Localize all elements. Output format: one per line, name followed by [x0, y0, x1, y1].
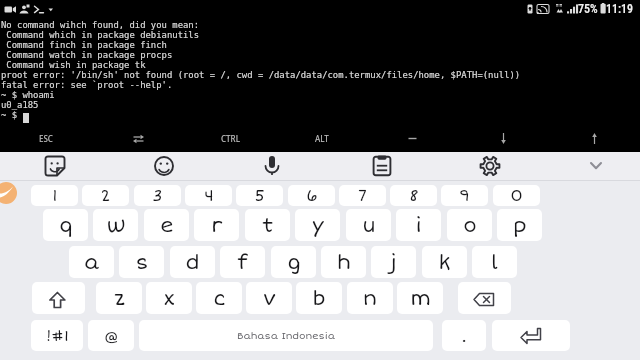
button[interactable]: o — [447, 209, 492, 241]
button[interactable]: t — [245, 209, 290, 241]
button[interactable]: h — [321, 246, 366, 278]
button[interactable]: 9 — [441, 185, 488, 206]
button[interactable]: k — [422, 246, 467, 278]
staticText: 8 — [409, 186, 419, 206]
button[interactable]: q — [43, 209, 88, 241]
button[interactable]: 6 — [288, 185, 335, 206]
staticText: ~ $ whoami — [1, 90, 55, 100]
button[interactable]: g — [271, 246, 316, 278]
staticText: Bahasa Indonesia — [237, 330, 335, 342]
staticText: No command wihch found, did you mean: — [1, 20, 200, 30]
button[interactable]: 3 — [134, 185, 181, 206]
staticText: !#1 — [46, 327, 69, 345]
staticText: 11:19 — [606, 2, 634, 16]
staticText: 7 — [358, 186, 367, 206]
button[interactable]: 2 — [82, 185, 129, 206]
button[interactable]: Emoji — [142, 154, 186, 178]
staticText: e — [160, 213, 174, 238]
staticText: @ — [104, 327, 119, 345]
staticText: 2 — [100, 186, 111, 206]
button[interactable]: r — [194, 209, 239, 241]
staticText: m — [410, 286, 431, 311]
button[interactable]: p — [497, 209, 542, 241]
button[interactable]: Arrow down — [458, 127, 549, 150]
button[interactable]: u — [346, 209, 391, 241]
staticText: ALT — [315, 133, 329, 144]
button[interactable]: Bahasa Indonesia — [139, 320, 433, 351]
staticText: n — [363, 286, 377, 311]
button[interactable]: @ — [88, 320, 134, 351]
button[interactable]: CTRL — [184, 127, 276, 150]
staticText: 5 — [254, 186, 265, 206]
staticText: x — [163, 286, 175, 311]
button[interactable]: Settings — [468, 154, 512, 178]
button[interactable]: 1 — [31, 185, 78, 206]
button[interactable]: Minus — [367, 127, 458, 150]
button[interactable]: n — [347, 282, 393, 314]
button[interactable]: c — [196, 282, 242, 314]
staticText: 1 — [52, 186, 58, 206]
staticText: Command watch in package procps — [1, 50, 173, 60]
other: Minus — [408, 133, 417, 144]
staticText: 75% — [578, 2, 598, 16]
button[interactable]: ALT — [276, 127, 367, 150]
button[interactable]: l — [472, 246, 517, 278]
button[interactable]: m — [397, 282, 443, 314]
staticText: 6 — [306, 186, 318, 206]
staticText: c — [213, 286, 226, 311]
button[interactable]: Backspace — [458, 282, 511, 314]
staticText: f — [237, 250, 248, 275]
button[interactable]: Assistant — [0, 182, 17, 204]
staticText: . — [461, 325, 467, 347]
button[interactable]: i — [396, 209, 441, 241]
button[interactable]: d — [170, 246, 215, 278]
button[interactable]: 8 — [390, 185, 437, 206]
staticText: v — [263, 286, 276, 311]
staticText: i — [415, 213, 422, 238]
staticText: y — [312, 213, 324, 238]
button[interactable]: b — [296, 282, 342, 314]
button[interactable]: 7 — [339, 185, 386, 206]
staticText: 0 — [510, 186, 523, 206]
button[interactable]: v — [246, 282, 292, 314]
button[interactable]: Hide keyboard — [574, 154, 618, 178]
button[interactable]: w — [93, 209, 138, 241]
other: Arrow up — [590, 133, 599, 144]
staticText: ESC — [39, 133, 53, 144]
button[interactable]: a — [69, 246, 114, 278]
button[interactable]: f — [220, 246, 265, 278]
staticText: 4 — [204, 186, 214, 206]
button[interactable]: x — [146, 282, 192, 314]
button[interactable]: 4 — [185, 185, 232, 206]
button[interactable]: y — [295, 209, 340, 241]
button[interactable]: j — [371, 246, 416, 278]
staticText: 3 — [152, 186, 163, 206]
staticText: Command which in package debianutils — [1, 30, 200, 40]
staticText: t — [262, 213, 274, 238]
button[interactable]: 0 — [493, 185, 540, 206]
button[interactable]: s — [119, 246, 164, 278]
button[interactable]: Stickers — [33, 154, 77, 178]
button[interactable]: e — [144, 209, 189, 241]
button[interactable]: Voice input — [250, 154, 294, 178]
other: Arrow down — [499, 133, 508, 144]
staticText: l — [491, 250, 498, 275]
button[interactable]: Clipboard — [360, 154, 404, 178]
button[interactable]: . — [442, 320, 486, 351]
button[interactable]: Arrow up — [549, 127, 640, 150]
staticText: g — [287, 250, 301, 275]
staticText: p — [513, 213, 527, 238]
button[interactable]: Enter — [492, 320, 570, 351]
button[interactable]: Tab — [92, 127, 184, 150]
button[interactable]: !#1 — [31, 320, 83, 351]
staticText: ~ $ — [1, 110, 23, 120]
staticText: q — [59, 213, 73, 238]
staticText: fatal error: see `proot --help'. — [1, 80, 173, 90]
button[interactable]: 5 — [236, 185, 283, 206]
button[interactable]: z — [96, 282, 142, 314]
button[interactable]: ESC — [0, 127, 92, 150]
staticText: s — [135, 250, 149, 275]
button[interactable]: Shift — [32, 282, 85, 314]
staticText: Command wish in package tk — [1, 60, 146, 70]
staticText: h — [337, 250, 351, 275]
